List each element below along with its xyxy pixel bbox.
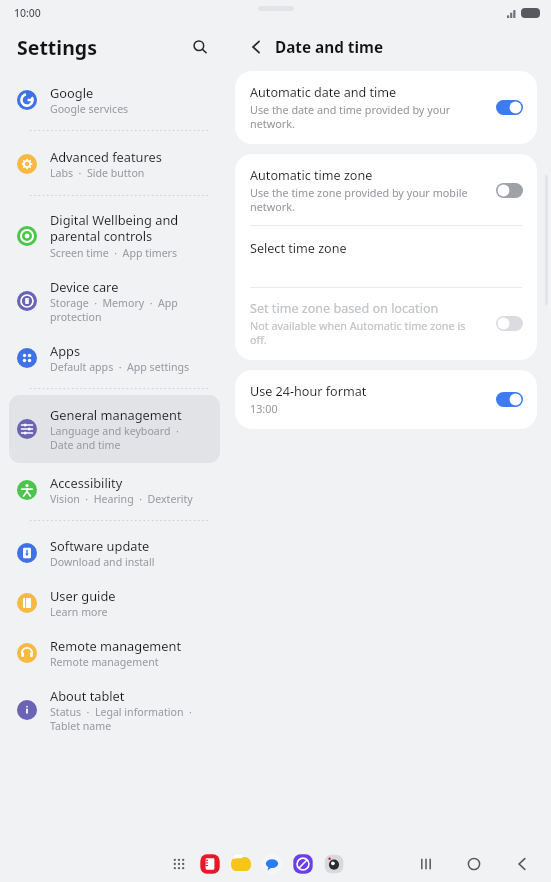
staticText: Learn more xyxy=(50,605,108,619)
button[interactable]: Notes xyxy=(199,853,221,875)
button[interactable]: General management xyxy=(9,395,220,463)
button[interactable]: Apps xyxy=(9,333,220,383)
button[interactable] xyxy=(496,316,523,331)
button[interactable]: Recents xyxy=(409,851,443,877)
staticText: Google services xyxy=(50,102,129,116)
button[interactable] xyxy=(496,392,523,407)
staticText: Storage · Memory · App protection xyxy=(50,296,178,324)
staticText: Download and install xyxy=(50,555,155,569)
staticText: Labs · Side button xyxy=(50,166,145,180)
staticText: Automatic date and time xyxy=(250,84,397,101)
button[interactable]: Google xyxy=(9,75,220,125)
button[interactable]: Set time zone based on location xyxy=(235,288,537,360)
staticText: Use the time zone provided by your mobil… xyxy=(250,185,468,214)
button[interactable] xyxy=(496,100,523,115)
staticText: 10:00 xyxy=(14,6,41,20)
button[interactable]: Back xyxy=(244,35,268,59)
staticText: Remote management xyxy=(50,637,182,654)
staticText: Accessibility xyxy=(50,474,123,491)
button[interactable]: Camera xyxy=(323,853,345,875)
staticText: Remote management xyxy=(50,655,159,669)
button[interactable]: Files xyxy=(230,853,252,875)
staticText: Device care xyxy=(50,278,119,295)
staticText: Set time zone based on location xyxy=(250,300,439,317)
staticText: Status · Legal information · Tablet name xyxy=(50,705,192,733)
button[interactable] xyxy=(496,183,523,198)
button[interactable]: Accessibility xyxy=(9,465,220,515)
button[interactable]: Messages xyxy=(261,853,283,875)
button[interactable]: About tablet xyxy=(9,678,220,742)
button[interactable]: Remote management xyxy=(9,628,220,678)
staticText: 13:00 xyxy=(250,401,278,416)
button[interactable]: User guide xyxy=(9,578,220,628)
staticText: Settings xyxy=(17,34,187,61)
staticText: Vision · Hearing · Dexterity xyxy=(50,492,193,506)
staticText: Language and keyboard · Date and time xyxy=(50,424,179,452)
button[interactable]: Automatic date and time xyxy=(235,71,537,144)
staticText: Use the date and time provided by your n… xyxy=(250,102,451,131)
staticText: Not available when Automatic time zone i… xyxy=(250,318,466,347)
staticText: Software update xyxy=(50,537,150,554)
button[interactable]: All apps xyxy=(168,853,190,875)
button[interactable]: Search xyxy=(187,34,213,60)
staticText: Automatic time zone xyxy=(250,167,373,184)
button[interactable]: Home xyxy=(457,851,491,877)
button[interactable]: Select time zone xyxy=(235,226,537,287)
staticText: About tablet xyxy=(50,687,125,704)
button[interactable]: Automatic time zone xyxy=(235,154,537,225)
staticText: Digital Wellbeing and parental controls xyxy=(50,211,179,245)
button[interactable]: Advanced features xyxy=(9,139,220,189)
button[interactable]: Back xyxy=(505,851,539,877)
button[interactable]: Internet xyxy=(292,853,314,875)
staticText: User guide xyxy=(50,587,116,604)
button[interactable]: Device care xyxy=(9,269,220,333)
button[interactable]: Digital Wellbeing and parental controls xyxy=(9,202,220,269)
button[interactable]: Software update xyxy=(9,528,220,578)
staticText: Screen time · App timers xyxy=(50,246,178,260)
staticText: Apps xyxy=(50,342,81,359)
staticText: Advanced features xyxy=(50,148,162,165)
staticText: General management xyxy=(50,406,182,423)
button[interactable]: Use 24-hour format xyxy=(235,370,537,429)
staticText: Date and time xyxy=(275,37,384,58)
staticText: Google xyxy=(50,84,94,101)
staticText: Select time zone xyxy=(250,240,347,257)
staticText: Default apps · App settings xyxy=(50,360,190,374)
staticText: Use 24-hour format xyxy=(250,383,367,400)
